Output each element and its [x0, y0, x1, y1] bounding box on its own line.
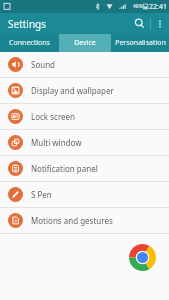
- staticText: Motions and gestures: [31, 215, 113, 226]
- button[interactable]: S Pen: [0, 182, 169, 207]
- button[interactable]: Device: [59, 34, 111, 52]
- button[interactable]: More options: [151, 15, 169, 33]
- staticText: Settings: [8, 17, 47, 31]
- staticText: Sound: [31, 59, 56, 70]
- button[interactable]: Multi window: [0, 130, 169, 155]
- staticText: Multi window: [31, 137, 82, 148]
- staticText: Display and wallpaper: [31, 85, 114, 96]
- staticText: Personalisation: [115, 38, 166, 48]
- button[interactable]: Connections: [0, 34, 59, 52]
- staticText: 48%: [133, 3, 143, 10]
- button[interactable]: Chrome: [129, 244, 156, 271]
- button[interactable]: Search: [129, 13, 150, 34]
- button[interactable]: Lock screen: [0, 104, 169, 129]
- staticText: Device: [74, 38, 96, 48]
- staticText: 22:41: [149, 2, 167, 12]
- staticText: Lock screen: [31, 111, 76, 122]
- button[interactable]: Notification panel: [0, 156, 169, 181]
- staticText: Connections: [9, 38, 50, 48]
- staticText: Notification panel: [31, 163, 98, 174]
- button[interactable]: Personalisation: [111, 34, 169, 52]
- staticText: S Pen: [31, 189, 52, 200]
- button[interactable]: Display and wallpaper: [0, 78, 169, 103]
- button[interactable]: Motions and gestures: [0, 208, 169, 233]
- button[interactable]: Sound: [0, 52, 169, 77]
